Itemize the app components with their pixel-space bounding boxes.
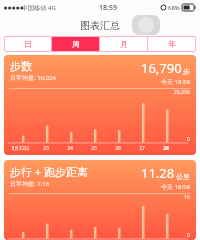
staticText: 28 [163, 145, 169, 152]
staticText: 日平均值: 10,024 [10, 74, 56, 82]
staticText: 今天 18:58 [161, 78, 190, 86]
staticText: 日 [24, 39, 32, 49]
staticText: 步数 [10, 59, 32, 73]
staticText: 27 [139, 145, 145, 152]
button[interactable]: 月 [100, 37, 147, 51]
staticText: 23 [43, 145, 49, 152]
staticText: 图表汇总 [80, 19, 120, 32]
staticText: 公里 [176, 172, 190, 181]
staticText: 4G [48, 4, 56, 12]
button[interactable]: 步数 [4, 55, 196, 155]
staticText: 25,000 [174, 89, 190, 96]
button[interactable]: 日 [5, 37, 51, 51]
staticText: 年 [168, 39, 176, 49]
staticText: 月 [120, 39, 128, 49]
staticText: 3月22日 [11, 145, 30, 152]
staticText: 步 [183, 67, 190, 76]
staticText: 中国移动 [22, 4, 46, 12]
staticText: 25 [91, 145, 97, 152]
button[interactable]: 周 [52, 37, 99, 51]
staticText: 0 [187, 232, 190, 239]
button[interactable]: 步行 + 跑步距离 [4, 160, 196, 240]
button[interactable]: 年 [148, 37, 195, 51]
staticText: 26 [115, 145, 121, 152]
staticText: 18:59 [99, 3, 117, 13]
staticText: 11.28 [141, 164, 175, 182]
staticText: 16,790 [141, 59, 182, 77]
staticText: 16 [184, 194, 190, 201]
button[interactable]: Profile [132, 15, 160, 35]
staticText: 0 [187, 136, 190, 143]
staticText: 周 [72, 39, 80, 49]
staticText: 24 [67, 145, 73, 152]
staticText: 今天 18:58 [161, 183, 190, 191]
staticText: 68% [168, 4, 180, 12]
staticText: 步行 + 跑步距离 [10, 164, 89, 179]
staticText: 日平均值: 7.16 [10, 180, 50, 188]
